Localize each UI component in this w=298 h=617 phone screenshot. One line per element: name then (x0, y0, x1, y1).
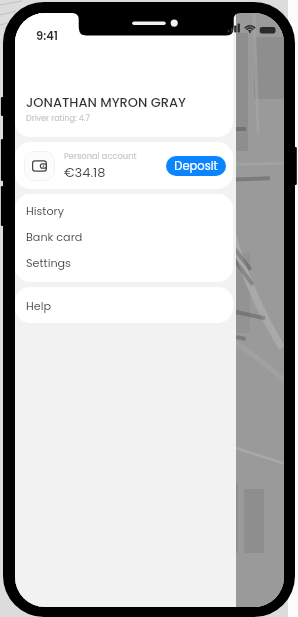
staticText: Driver rating: 4.7 (26, 113, 90, 124)
button[interactable]: Help (15, 287, 233, 323)
staticText: JONATHAN MYRON GRAY (26, 93, 186, 111)
staticText: History (26, 203, 65, 219)
staticText: Settings (26, 255, 71, 271)
staticText: Bank card (26, 229, 83, 245)
button[interactable]: Deposit (166, 156, 226, 176)
button[interactable]: Bank card (15, 224, 233, 250)
button[interactable]: Settings (15, 250, 233, 276)
button[interactable]: Wallet (24, 151, 55, 181)
staticText: Help (26, 298, 51, 314)
staticText: Personal account (64, 150, 137, 162)
button[interactable]: History (15, 198, 233, 224)
staticText: €34.18 (64, 163, 106, 181)
staticText: Deposit (174, 158, 218, 174)
staticText: 9:41 (36, 28, 58, 44)
